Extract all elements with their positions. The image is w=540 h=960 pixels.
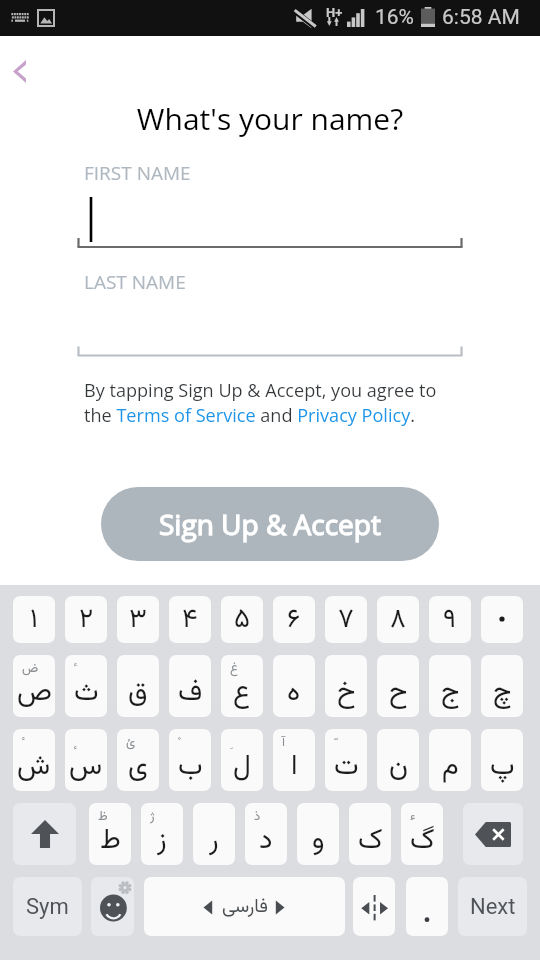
button[interactable]: ْ bbox=[169, 729, 211, 791]
button[interactable]: ۲ bbox=[65, 596, 107, 643]
button[interactable]: ۴ bbox=[169, 596, 211, 643]
button[interactable]: ذ bbox=[245, 803, 287, 865]
staticText: What's your name? bbox=[0, 98, 540, 139]
button[interactable]: ۷ bbox=[325, 596, 367, 643]
staticText: ص bbox=[17, 671, 52, 715]
staticText: غ bbox=[230, 659, 239, 679]
button[interactable]: ۱ bbox=[13, 596, 55, 643]
staticText: ۷ bbox=[338, 599, 354, 641]
staticText: ۱ bbox=[30, 599, 38, 641]
staticText: ن bbox=[389, 745, 408, 789]
staticText: گ bbox=[410, 819, 435, 863]
staticText: ۸ bbox=[390, 599, 406, 641]
button[interactable]: Next bbox=[458, 877, 527, 936]
staticText: ک bbox=[358, 819, 383, 863]
staticText: خ bbox=[337, 671, 356, 715]
button[interactable]: ج bbox=[429, 655, 471, 717]
button[interactable]: و bbox=[297, 803, 339, 865]
staticText: ر bbox=[209, 819, 219, 863]
staticText: ض bbox=[22, 659, 39, 679]
button[interactable]: Emoji and keyboard settings bbox=[91, 877, 134, 936]
staticText: د bbox=[259, 819, 273, 863]
staticText: ف bbox=[178, 671, 203, 715]
staticText: ه bbox=[287, 671, 301, 715]
staticText: فارسی bbox=[222, 893, 268, 923]
button[interactable]: م bbox=[429, 729, 471, 791]
staticText: س bbox=[69, 745, 103, 789]
staticText: ۶ bbox=[287, 599, 301, 641]
button[interactable]: ئ bbox=[117, 729, 159, 791]
staticText: LAST NAME bbox=[84, 269, 186, 295]
button[interactable]: ض bbox=[13, 655, 55, 717]
button[interactable]: ک bbox=[349, 803, 391, 865]
staticText: ل bbox=[233, 745, 251, 789]
staticText: FIRST NAME bbox=[84, 160, 191, 186]
button[interactable]: ٕ bbox=[65, 729, 107, 791]
button[interactable]: ء bbox=[401, 803, 443, 865]
staticText: ذ bbox=[254, 807, 261, 827]
staticText: پ bbox=[490, 745, 515, 789]
staticText: ح bbox=[389, 671, 408, 715]
button[interactable]: Backspace bbox=[463, 803, 523, 865]
button[interactable]: ۸ bbox=[377, 596, 419, 643]
button[interactable]: Sign Up & Accept bbox=[101, 487, 439, 561]
button[interactable]: ر bbox=[193, 803, 235, 865]
staticText: 6:58 AM bbox=[442, 5, 520, 30]
button[interactable]: ٔ bbox=[65, 655, 107, 717]
button[interactable]: Sym bbox=[13, 877, 82, 936]
staticText: و bbox=[312, 819, 325, 863]
staticText: Sign Up & Accept bbox=[159, 505, 381, 543]
staticText: آ bbox=[282, 733, 286, 753]
staticText: م bbox=[442, 745, 459, 789]
button[interactable]: ف bbox=[169, 655, 211, 717]
staticText: ث bbox=[74, 671, 99, 715]
button[interactable] bbox=[481, 596, 523, 643]
staticText: ا bbox=[291, 745, 298, 789]
button[interactable]: Period bbox=[406, 877, 448, 936]
button[interactable]: چ bbox=[481, 655, 523, 717]
staticText: ع bbox=[233, 671, 251, 715]
staticText: ط bbox=[100, 819, 121, 863]
staticText: ئ bbox=[126, 733, 136, 753]
staticText: ء bbox=[410, 807, 416, 827]
button[interactable]: ه bbox=[273, 655, 315, 717]
staticText: ۵ bbox=[234, 599, 250, 641]
staticText: ۳ bbox=[129, 599, 147, 641]
staticText: ۲ bbox=[79, 599, 94, 641]
button[interactable]: پ bbox=[481, 729, 523, 791]
staticText: By tapping Sign Up & Accept, you agree t… bbox=[84, 378, 454, 428]
button[interactable]: ۶ bbox=[273, 596, 315, 643]
staticText: ج bbox=[441, 671, 460, 715]
staticText: ت bbox=[334, 745, 359, 789]
staticText: ژ bbox=[150, 807, 155, 827]
button[interactable]: Move cursor bbox=[353, 877, 395, 936]
staticText: ظ bbox=[98, 807, 108, 827]
button[interactable]: Space bbox=[144, 877, 345, 936]
staticText: ۹ bbox=[443, 599, 457, 641]
button[interactable]: ۹ bbox=[429, 596, 471, 643]
button[interactable]: ژ bbox=[141, 803, 183, 865]
button[interactable]: ٔ bbox=[13, 729, 55, 791]
staticText: ق bbox=[128, 671, 148, 715]
staticText: ز bbox=[157, 819, 167, 863]
button[interactable]: ۳ bbox=[117, 596, 159, 643]
button[interactable]: Shift bbox=[13, 803, 76, 865]
staticText: Sym bbox=[26, 894, 69, 920]
button[interactable]: ظ bbox=[89, 803, 131, 865]
button[interactable]: خ bbox=[325, 655, 367, 717]
staticText: چ bbox=[493, 671, 512, 715]
button[interactable]: ۵ bbox=[221, 596, 263, 643]
staticText: ب bbox=[178, 745, 203, 789]
button[interactable]: Back bbox=[0, 49, 48, 94]
button[interactable]: ق bbox=[117, 655, 159, 717]
button[interactable]: غ bbox=[221, 655, 263, 717]
staticText: 16% bbox=[375, 5, 414, 30]
button[interactable]: ِ bbox=[221, 729, 263, 791]
button[interactable]: ّ bbox=[325, 729, 367, 791]
staticText: ۴ bbox=[182, 599, 198, 641]
button[interactable]: آ bbox=[273, 729, 315, 791]
button[interactable]: ن bbox=[377, 729, 419, 791]
button[interactable]: ح bbox=[377, 655, 419, 717]
staticText: Next bbox=[470, 894, 516, 920]
staticText: ی bbox=[128, 745, 148, 789]
